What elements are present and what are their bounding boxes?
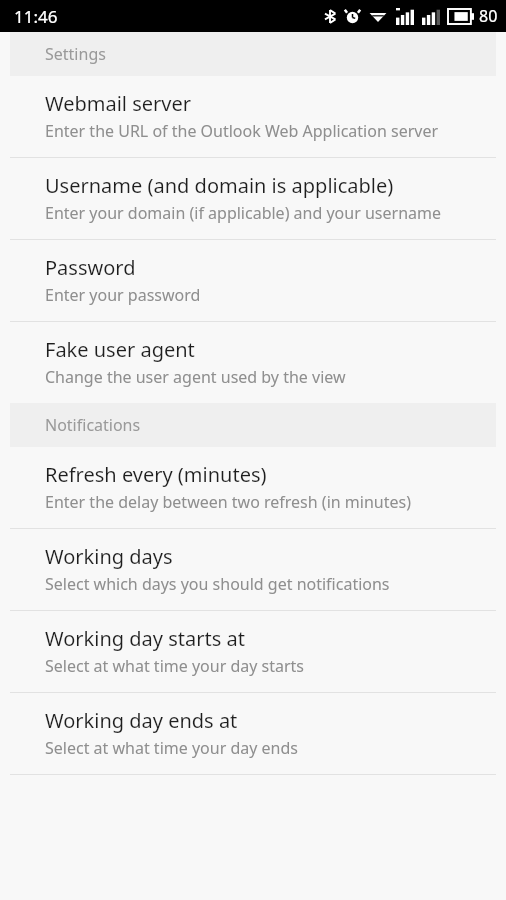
staticText: Working day starts at <box>45 625 245 652</box>
staticText: 11:46 <box>14 5 58 28</box>
staticText: Webmail server <box>45 90 192 117</box>
button[interactable]: Webmail server <box>0 76 506 158</box>
staticText: Settings <box>45 43 106 65</box>
staticText: Enter your password <box>45 284 201 306</box>
button[interactable]: Fake user agent <box>0 322 506 403</box>
button[interactable]: Username (and domain is applicable) <box>0 158 506 240</box>
button[interactable]: Working day ends at <box>0 693 506 775</box>
staticText: Enter your domain (if applicable) and yo… <box>45 202 441 224</box>
staticText: Select at what time your day ends <box>45 737 298 759</box>
staticText: Working days <box>45 543 173 570</box>
staticText: Username (and domain is applicable) <box>45 172 394 199</box>
staticText: 80 <box>479 5 498 27</box>
staticText: Enter the URL of the Outlook Web Applica… <box>45 120 439 142</box>
staticText: Select at what time your day starts <box>45 655 305 677</box>
staticText: Password <box>45 254 136 281</box>
staticText: Notifications <box>45 414 141 436</box>
staticText: Fake user agent <box>45 336 195 363</box>
button[interactable]: Password <box>0 240 506 322</box>
staticText: Enter the delay between two refresh (in … <box>45 491 411 513</box>
staticText: Select which days you should get notific… <box>45 573 390 595</box>
button[interactable]: Refresh every (minutes) <box>0 447 506 529</box>
button[interactable]: Working day starts at <box>0 611 506 693</box>
staticText: Refresh every (minutes) <box>45 461 267 488</box>
staticText: Working day ends at <box>45 707 238 734</box>
button[interactable]: Working days <box>0 529 506 611</box>
staticText: Change the user agent used by the view <box>45 366 346 388</box>
